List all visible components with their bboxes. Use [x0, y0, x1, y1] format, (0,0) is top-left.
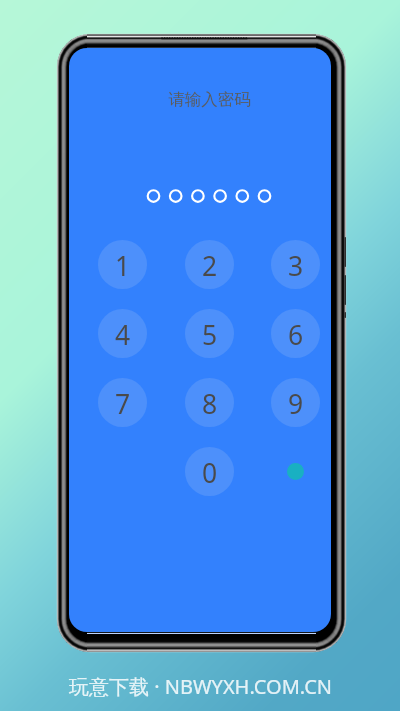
button[interactable]: 1 — [98, 240, 147, 289]
button[interactable]: 7 — [98, 378, 147, 427]
staticText: 2 — [202, 248, 218, 284]
staticText: 3 — [288, 248, 304, 284]
button[interactable]: 8 — [185, 378, 234, 427]
button[interactable]: Delete — [287, 463, 304, 480]
staticText: 0 — [202, 455, 218, 491]
button[interactable]: 9 — [271, 378, 320, 427]
staticText: 玩意下载 · NBWYXH.COM.CN — [69, 673, 332, 700]
button[interactable]: 5 — [185, 309, 234, 358]
button[interactable]: 2 — [185, 240, 234, 289]
button[interactable]: 6 — [271, 309, 320, 358]
staticText: 5 — [202, 317, 218, 353]
staticText: 1 — [115, 248, 131, 284]
staticText: 请输入密码 — [168, 89, 251, 110]
staticText: 8 — [202, 386, 218, 422]
button[interactable]: 0 — [185, 447, 234, 496]
button[interactable]: 4 — [98, 309, 147, 358]
staticText: 9 — [288, 386, 304, 422]
staticText: 4 — [115, 317, 131, 353]
staticText: 7 — [115, 386, 131, 422]
button[interactable]: 3 — [271, 240, 320, 289]
staticText: 6 — [288, 317, 304, 353]
